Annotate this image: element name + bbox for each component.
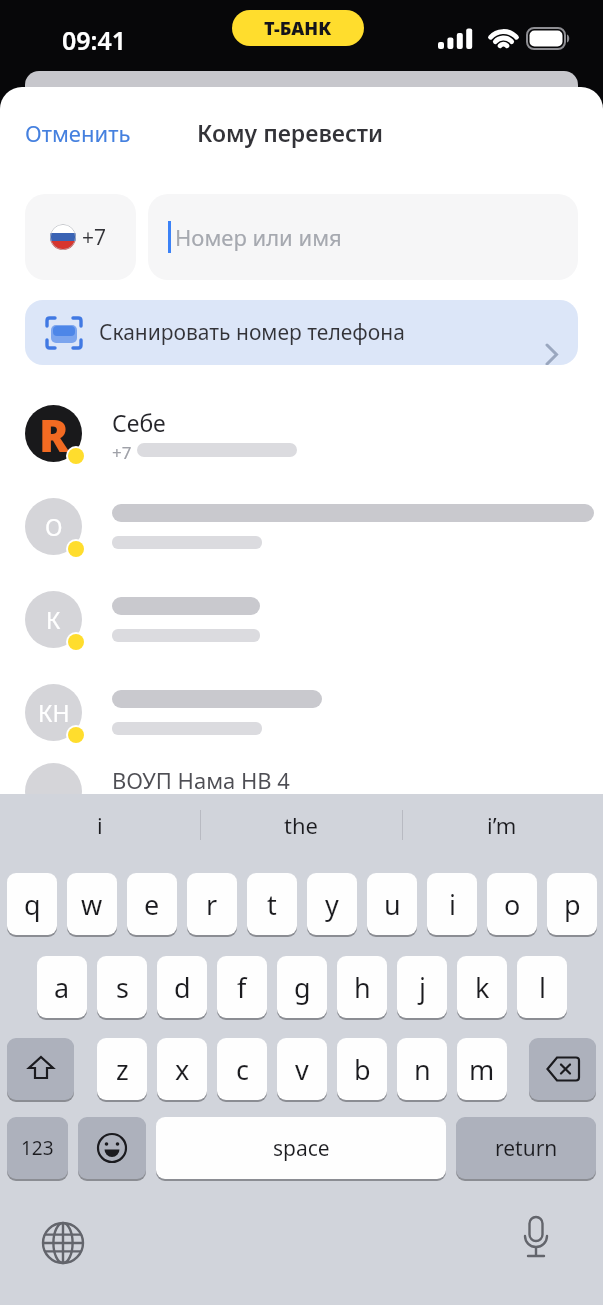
button[interactable]: Сканировать номер телефона xyxy=(25,300,578,365)
button[interactable]: p xyxy=(547,873,597,935)
button[interactable]: space xyxy=(156,1117,446,1179)
staticText: Сканировать номер телефона xyxy=(99,318,405,347)
staticText: t xyxy=(267,886,277,923)
staticText: a xyxy=(54,969,70,1006)
button[interactable]: b xyxy=(337,1038,387,1100)
button[interactable]: d xyxy=(157,956,207,1018)
button[interactable]: h xyxy=(337,956,387,1018)
button[interactable]: k xyxy=(457,956,507,1018)
button[interactable]: КН xyxy=(25,684,578,764)
button[interactable]: 123 xyxy=(7,1117,68,1179)
staticText: Т-БАНК xyxy=(264,16,332,41)
button[interactable]: Номер или имя xyxy=(148,194,578,280)
button[interactable]: r xyxy=(187,873,237,935)
button[interactable]: q xyxy=(7,873,57,935)
button[interactable]: y xyxy=(307,873,357,935)
button[interactable]: n xyxy=(397,1038,447,1100)
staticText: n xyxy=(414,1051,431,1088)
staticText: ВОУП Нама НВ 4 xyxy=(112,765,290,795)
staticText: m xyxy=(469,1051,495,1088)
button[interactable]: +7 xyxy=(25,194,136,280)
button[interactable]: z xyxy=(97,1038,147,1100)
button[interactable]: s xyxy=(97,956,147,1018)
staticText: z xyxy=(116,1051,129,1088)
staticText: b xyxy=(354,1051,371,1088)
button[interactable]: v xyxy=(277,1038,327,1100)
staticText: e xyxy=(144,886,160,923)
button[interactable]: К xyxy=(25,591,578,671)
button[interactable]: t xyxy=(247,873,297,935)
staticText: s xyxy=(116,969,129,1006)
staticText: space xyxy=(273,1134,330,1163)
staticText: g xyxy=(294,969,311,1006)
button[interactable]: i xyxy=(427,873,477,935)
staticText: x xyxy=(175,1051,190,1088)
staticText: k xyxy=(475,969,490,1006)
button[interactable]: R xyxy=(25,405,578,485)
button[interactable] xyxy=(33,1213,93,1273)
staticText: r xyxy=(206,886,218,923)
staticText: 09:41 xyxy=(62,23,127,57)
staticText: КН xyxy=(38,697,70,728)
staticText: Себе xyxy=(112,407,166,438)
staticText: Отменить xyxy=(25,118,131,148)
button[interactable]: Отменить xyxy=(25,118,131,148)
button[interactable] xyxy=(7,1038,74,1100)
staticText: y xyxy=(325,886,339,923)
button[interactable] xyxy=(506,1211,566,1271)
staticText: h xyxy=(354,969,371,1006)
staticText: w xyxy=(81,886,103,923)
staticText: i’m xyxy=(487,810,517,840)
button[interactable]: m xyxy=(457,1038,507,1100)
button[interactable]: f xyxy=(217,956,267,1018)
staticText: О xyxy=(45,511,63,542)
button[interactable]: o xyxy=(487,873,537,935)
staticText: return xyxy=(495,1134,558,1163)
button[interactable]: i’m xyxy=(412,802,592,848)
staticText: l xyxy=(539,969,546,1006)
button[interactable]: u xyxy=(367,873,417,935)
button[interactable]: О xyxy=(25,498,578,578)
button[interactable]: a xyxy=(37,956,87,1018)
staticText: d xyxy=(174,969,191,1006)
button[interactable]: c xyxy=(217,1038,267,1100)
button[interactable] xyxy=(529,1038,596,1100)
staticText: j xyxy=(419,969,426,1006)
staticText: R xyxy=(39,405,69,462)
button[interactable] xyxy=(78,1117,146,1179)
staticText: the xyxy=(284,810,318,840)
button[interactable]: l xyxy=(517,956,567,1018)
staticText: o xyxy=(504,886,521,923)
button[interactable]: w xyxy=(67,873,117,935)
staticText: i xyxy=(449,886,456,923)
staticText: К xyxy=(46,604,61,635)
staticText: 123 xyxy=(21,1135,54,1161)
staticText: p xyxy=(564,886,581,923)
staticText: c xyxy=(236,1051,249,1088)
button[interactable]: return xyxy=(456,1117,596,1179)
button[interactable]: the xyxy=(211,802,391,848)
staticText: f xyxy=(237,969,247,1006)
staticText: i xyxy=(97,810,103,840)
staticText: Номер или имя xyxy=(175,222,342,252)
button[interactable]: x xyxy=(157,1038,207,1100)
button[interactable]: g xyxy=(277,956,327,1018)
button[interactable]: e xyxy=(127,873,177,935)
button[interactable]: Т-БАНК xyxy=(232,10,364,46)
staticText: +7 xyxy=(82,223,107,252)
staticText: u xyxy=(384,886,401,923)
staticText: Кому перевести xyxy=(197,117,384,148)
button[interactable]: i xyxy=(10,802,190,848)
button[interactable]: j xyxy=(397,956,447,1018)
staticText: q xyxy=(24,886,41,923)
staticText: +7 xyxy=(112,441,132,464)
staticText: v xyxy=(295,1051,309,1088)
